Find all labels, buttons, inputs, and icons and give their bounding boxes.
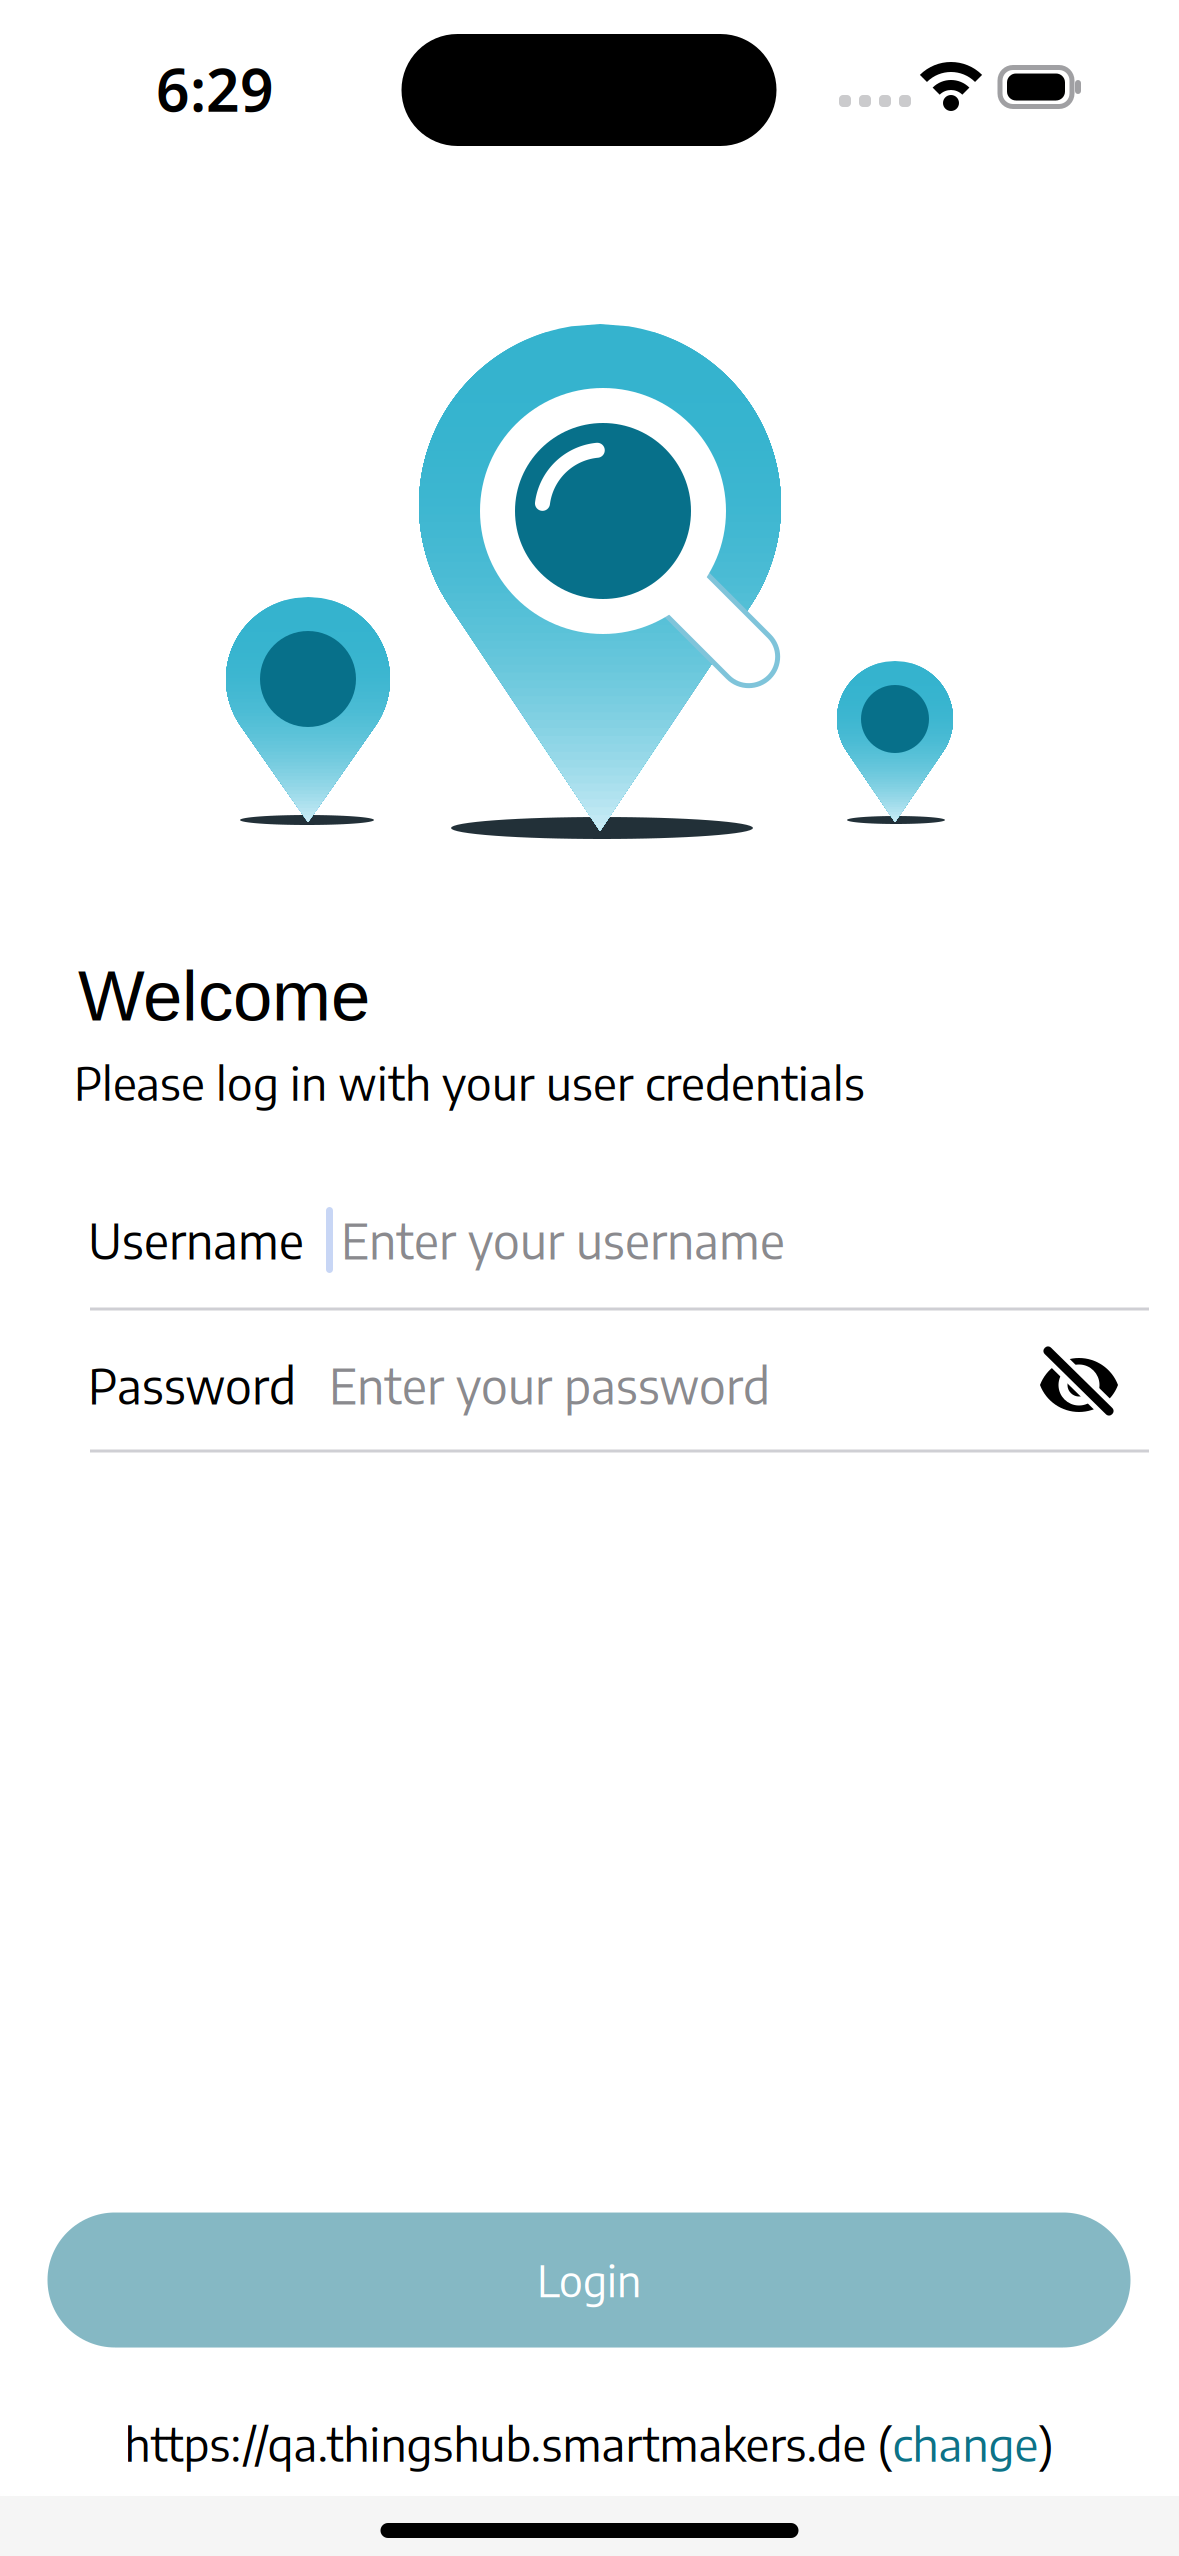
staticText: https://qa.thingshub.smartmakers.de ( xyxy=(124,2414,892,2472)
staticText: Welcome xyxy=(78,956,370,1035)
button[interactable]: Show password xyxy=(1036,1340,1122,1422)
staticText: Login xyxy=(537,2253,641,2307)
button[interactable]: change xyxy=(892,2414,1038,2472)
staticText: 6:29 xyxy=(156,49,274,129)
staticText: change xyxy=(892,2414,1038,2472)
staticText: ) xyxy=(1038,2414,1053,2472)
staticText: Enter your username xyxy=(341,1210,785,1270)
staticText: Enter your password xyxy=(329,1355,770,1415)
staticText: Username xyxy=(88,1210,304,1270)
button[interactable]: Login xyxy=(47,2212,1130,2347)
staticText: Password xyxy=(88,1355,296,1415)
staticText: Please log in with your user credentials xyxy=(74,1053,865,1111)
